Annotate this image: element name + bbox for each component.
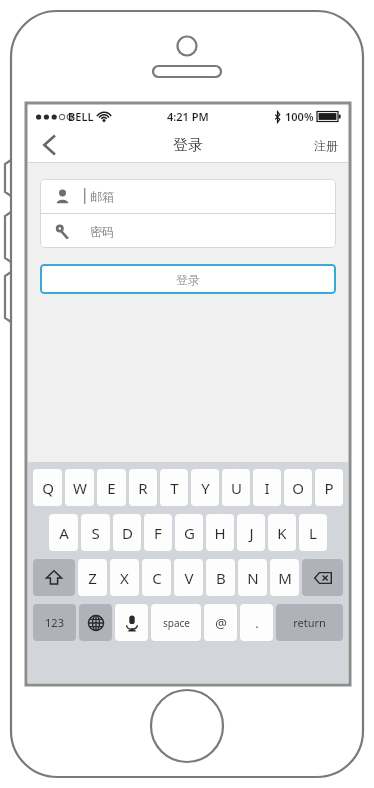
staticText: return bbox=[293, 615, 326, 630]
staticText: U bbox=[231, 478, 242, 498]
staticText: Z bbox=[88, 568, 97, 588]
button[interactable]: Back bbox=[28, 127, 70, 163]
staticText: H bbox=[214, 523, 226, 543]
staticText: 123 bbox=[45, 615, 64, 630]
button[interactable]: B bbox=[206, 559, 235, 596]
button[interactable]: E bbox=[97, 469, 126, 506]
button[interactable]: J bbox=[237, 514, 265, 551]
button[interactable]: Y bbox=[191, 469, 219, 506]
button[interactable]: R bbox=[129, 469, 157, 506]
staticText: X bbox=[120, 568, 129, 588]
button[interactable]: Delete bbox=[302, 559, 343, 596]
button[interactable]: A bbox=[49, 514, 78, 551]
staticText: 登录 bbox=[176, 272, 200, 287]
staticText: . bbox=[255, 614, 259, 632]
staticText: R bbox=[138, 478, 148, 498]
staticText: 密码 bbox=[90, 224, 114, 239]
staticText: P bbox=[324, 478, 334, 498]
staticText: N bbox=[247, 568, 259, 588]
button[interactable]: 邮箱 bbox=[40, 179, 336, 213]
staticText: Y bbox=[201, 478, 210, 498]
button[interactable]: 123 bbox=[33, 604, 76, 641]
staticText: A bbox=[59, 523, 69, 543]
staticText: J bbox=[249, 523, 254, 543]
button[interactable]: T bbox=[160, 469, 188, 506]
staticText: O bbox=[292, 478, 304, 498]
button[interactable]: I bbox=[253, 469, 281, 506]
staticText: 4:21 PM bbox=[167, 109, 209, 124]
button[interactable]: Z bbox=[78, 559, 107, 596]
button[interactable]: L bbox=[299, 514, 327, 551]
button[interactable]: @ bbox=[204, 604, 237, 641]
button[interactable]: space bbox=[151, 604, 201, 641]
button[interactable]: V bbox=[174, 559, 203, 596]
staticText: Q bbox=[42, 478, 54, 498]
staticText: L bbox=[309, 523, 317, 543]
button[interactable]: W bbox=[65, 469, 94, 506]
staticText: T bbox=[170, 478, 179, 498]
staticText: B bbox=[216, 568, 226, 588]
button[interactable]: O bbox=[284, 469, 312, 506]
staticText: 邮箱 bbox=[90, 189, 114, 204]
button[interactable]: S bbox=[81, 514, 110, 551]
staticText: V bbox=[184, 568, 194, 588]
staticText: C bbox=[152, 568, 162, 588]
button[interactable]: Q bbox=[33, 469, 62, 506]
button[interactable]: K bbox=[268, 514, 296, 551]
button[interactable]: C bbox=[142, 559, 171, 596]
staticText: W bbox=[73, 478, 87, 498]
staticText: K bbox=[277, 523, 287, 543]
button[interactable]: D bbox=[113, 514, 141, 551]
button[interactable]: M bbox=[270, 559, 299, 596]
staticText: BELL bbox=[68, 109, 94, 124]
button[interactable]: Change keyboard bbox=[79, 604, 112, 641]
staticText: 注册 bbox=[314, 138, 338, 153]
button[interactable]: return bbox=[276, 604, 343, 641]
staticText: 登录 bbox=[173, 136, 203, 155]
staticText: E bbox=[107, 478, 116, 498]
button[interactable]: 密码 bbox=[40, 214, 336, 248]
button[interactable]: H bbox=[206, 514, 234, 551]
button[interactable]: 登录 bbox=[40, 264, 336, 294]
staticText: 100% bbox=[285, 109, 314, 124]
button[interactable]: 注册 bbox=[304, 127, 348, 163]
button[interactable]: U bbox=[222, 469, 250, 506]
button[interactable]: Dictate bbox=[115, 604, 148, 641]
button[interactable]: N bbox=[238, 559, 267, 596]
button[interactable]: Shift bbox=[33, 559, 75, 596]
button[interactable]: G bbox=[175, 514, 203, 551]
staticText: M bbox=[278, 568, 292, 588]
staticText: I bbox=[264, 478, 270, 498]
staticText: F bbox=[154, 523, 162, 543]
button[interactable]: X bbox=[110, 559, 139, 596]
button[interactable]: F bbox=[144, 514, 172, 551]
staticText: S bbox=[91, 523, 100, 543]
button[interactable]: P bbox=[315, 469, 343, 506]
staticText: D bbox=[122, 523, 133, 543]
staticText: G bbox=[184, 523, 195, 543]
button[interactable]: . bbox=[240, 604, 273, 641]
staticText: space bbox=[163, 616, 190, 630]
staticText: @ bbox=[215, 614, 227, 632]
